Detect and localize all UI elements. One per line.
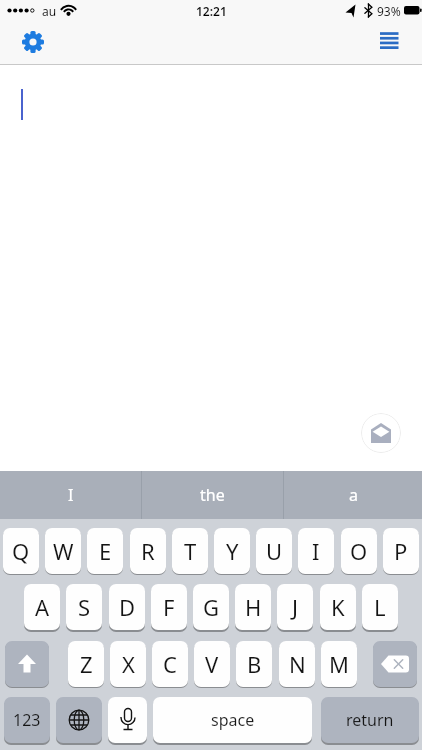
button[interactable] [361, 413, 401, 453]
button[interactable]: D [109, 584, 145, 630]
staticText: V [205, 649, 219, 679]
staticText: O [350, 536, 368, 566]
staticText: 12:21 [196, 3, 227, 19]
button[interactable] [13, 22, 53, 62]
button[interactable]: V [194, 641, 230, 687]
button[interactable]: C [152, 641, 188, 687]
staticText: E [99, 536, 112, 566]
staticText: space [211, 709, 255, 731]
staticText: H [245, 592, 262, 622]
button[interactable] [5, 641, 49, 687]
staticText: X [122, 649, 135, 679]
staticText: A [35, 592, 50, 622]
button[interactable]: O [341, 528, 377, 574]
button[interactable]: T [172, 528, 208, 574]
button[interactable]: Q [3, 528, 39, 574]
staticText: Q [12, 536, 30, 566]
button[interactable]: J [277, 584, 313, 630]
staticText: B [247, 649, 262, 679]
button[interactable]: G [193, 584, 229, 630]
staticText: W [53, 536, 74, 566]
staticText: C [163, 649, 177, 679]
button[interactable] [373, 641, 417, 687]
staticText: D [119, 592, 136, 622]
staticText: T [184, 536, 197, 566]
button[interactable]: X [110, 641, 146, 687]
button[interactable]: Z [68, 641, 104, 687]
button[interactable]: K [320, 584, 356, 630]
staticText: Y [226, 536, 239, 566]
button[interactable]: W [45, 528, 81, 574]
button[interactable]: the [142, 471, 283, 519]
button[interactable]: I [298, 528, 334, 574]
staticText: 93% [377, 3, 401, 19]
button[interactable]: 123 [4, 697, 50, 743]
staticText: G [203, 592, 220, 622]
button[interactable]: I [0, 471, 141, 519]
button[interactable]: B [236, 641, 272, 687]
button[interactable]: E [87, 528, 123, 574]
button[interactable]: a [284, 471, 422, 519]
button[interactable]: H [235, 584, 271, 630]
staticText: a [349, 484, 358, 506]
staticText: Z [80, 649, 93, 679]
button[interactable] [369, 21, 409, 61]
button[interactable]: F [151, 584, 187, 630]
staticText: P [394, 536, 408, 566]
button[interactable]: return [321, 697, 419, 743]
button[interactable]: Y [214, 528, 250, 574]
staticText: M [329, 649, 349, 679]
staticText: 123 [13, 709, 41, 731]
staticText: I [312, 536, 320, 566]
staticText: N [289, 649, 306, 679]
staticText: U [266, 536, 283, 566]
button[interactable]: space [153, 697, 312, 743]
staticText: return [346, 709, 394, 731]
staticText: I [68, 484, 74, 506]
button[interactable]: N [279, 641, 315, 687]
button[interactable]: A [24, 584, 60, 630]
button[interactable]: S [66, 584, 102, 630]
button[interactable] [108, 697, 147, 743]
staticText: S [78, 592, 91, 622]
button[interactable]: M [321, 641, 357, 687]
staticText: K [331, 592, 345, 622]
staticText: L [374, 592, 386, 622]
staticText: J [292, 592, 299, 622]
staticText: F [163, 592, 175, 622]
staticText: R [141, 536, 155, 566]
staticText: the [200, 484, 225, 506]
button[interactable]: U [256, 528, 292, 574]
staticText: au [42, 3, 57, 19]
button[interactable]: L [362, 584, 398, 630]
button[interactable] [56, 697, 102, 743]
button[interactable]: R [130, 528, 166, 574]
button[interactable]: P [383, 528, 419, 574]
